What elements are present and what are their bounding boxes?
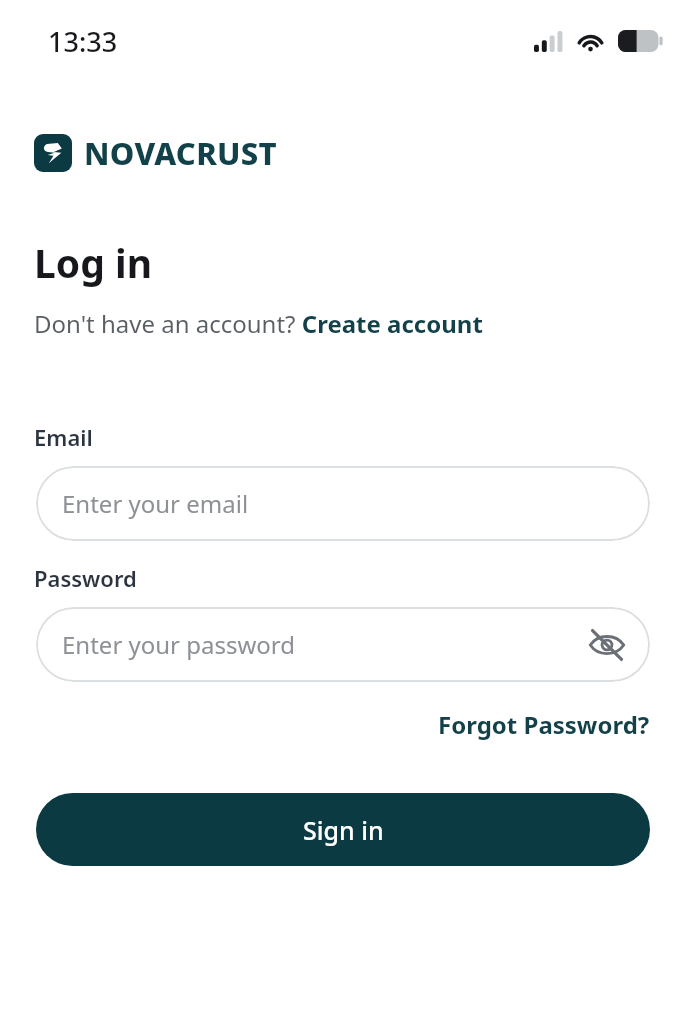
- button[interactable]: Enter your password: [36, 607, 650, 682]
- staticText: NOVACRUST: [84, 132, 277, 174]
- staticText: Enter your password: [62, 628, 296, 661]
- button[interactable]: Show password: [584, 622, 630, 668]
- button[interactable]: NOVACRUST: [34, 132, 277, 174]
- staticText: Sign in: [303, 813, 384, 847]
- staticText: 13:33: [48, 23, 118, 60]
- staticText: Log in: [34, 236, 152, 289]
- staticText: Enter your email: [62, 487, 249, 520]
- button[interactable]: Forgot Password?: [438, 708, 650, 741]
- button[interactable]: Enter your email: [36, 466, 650, 541]
- staticText: Password: [34, 563, 137, 593]
- staticText: Email: [34, 422, 93, 452]
- button[interactable]: Sign in: [36, 793, 650, 866]
- button[interactable]: Don't have an account? Create account: [34, 307, 483, 340]
